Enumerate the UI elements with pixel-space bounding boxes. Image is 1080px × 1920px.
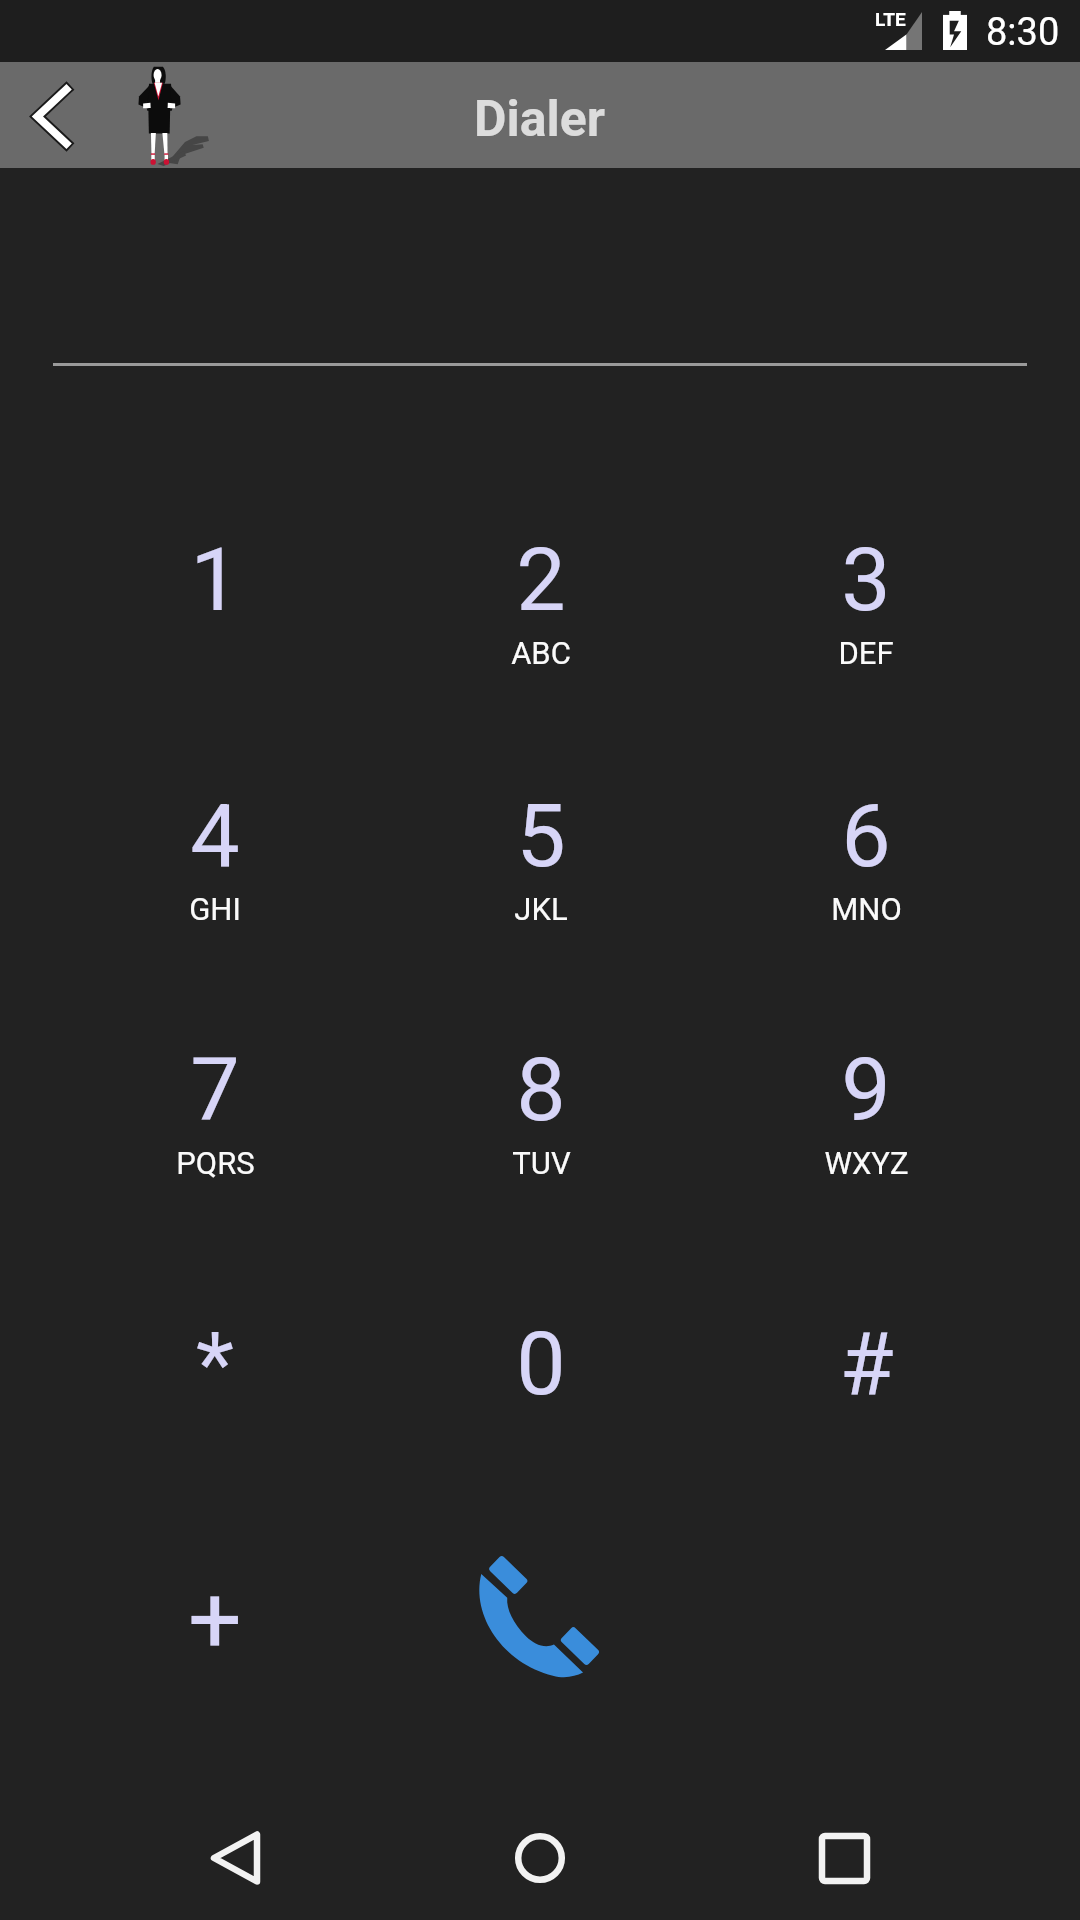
staticText: 2 xyxy=(516,528,566,631)
staticText: 9 xyxy=(841,1038,891,1141)
staticText: 8 xyxy=(516,1038,566,1141)
button[interactable]: 3 xyxy=(726,528,1006,718)
button[interactable]: Call xyxy=(456,1541,626,1691)
staticText: LTE xyxy=(875,8,906,30)
button[interactable]: 5 xyxy=(401,784,681,974)
button[interactable]: * xyxy=(75,1312,355,1462)
staticText: PQRS xyxy=(176,1145,255,1181)
staticText: DEF xyxy=(838,635,894,671)
button[interactable]: Back xyxy=(0,62,102,168)
staticText: JKL xyxy=(514,891,568,927)
staticText: 6 xyxy=(841,784,891,887)
staticText: 3 xyxy=(841,528,891,631)
staticText: TUV xyxy=(512,1145,571,1181)
button[interactable]: Home xyxy=(480,1798,600,1918)
staticText: Dialer xyxy=(474,90,606,149)
button[interactable]: 9 xyxy=(726,1038,1006,1228)
button[interactable]: + xyxy=(130,1545,300,1695)
staticText: ABC xyxy=(511,635,571,671)
button[interactable]: 6 xyxy=(726,784,1006,974)
button[interactable]: Recent apps xyxy=(784,1798,904,1918)
staticText: 8:30 xyxy=(986,10,1060,55)
staticText: 7 xyxy=(190,1038,240,1141)
button[interactable]: 8 xyxy=(401,1038,681,1228)
staticText: 5 xyxy=(516,784,566,887)
button[interactable]: 4 xyxy=(75,784,355,974)
staticText: 4 xyxy=(190,784,240,887)
staticText: WXYZ xyxy=(824,1145,909,1181)
button[interactable]: 0 xyxy=(401,1312,681,1462)
staticText: GHI xyxy=(189,891,241,927)
button[interactable]: 7 xyxy=(75,1038,355,1228)
staticText: MNO xyxy=(831,891,902,927)
button[interactable]: 2 xyxy=(401,528,681,718)
staticText: 1 xyxy=(190,528,240,631)
staticText: # xyxy=(839,1312,894,1415)
button[interactable]: # xyxy=(726,1312,1006,1462)
staticText: + xyxy=(188,1564,242,1675)
staticText: * xyxy=(196,1312,234,1415)
staticText: 0 xyxy=(516,1312,566,1415)
button[interactable]: Back xyxy=(176,1798,296,1918)
button[interactable]: 1 xyxy=(75,528,355,678)
